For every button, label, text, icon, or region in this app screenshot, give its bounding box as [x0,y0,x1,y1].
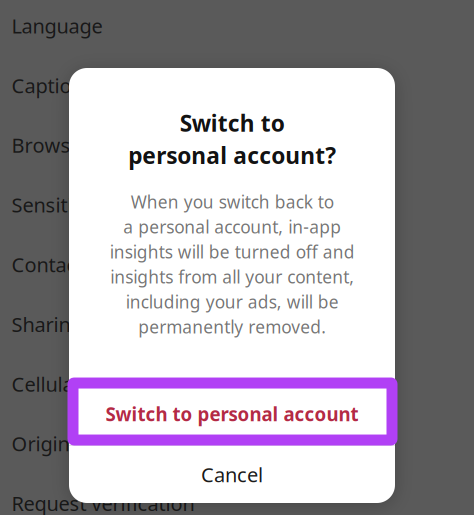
button[interactable]: Sensitive content [0,0,330,26]
button[interactable]: Sharing to other apps [0,0,330,26]
button[interactable]: Language [0,0,330,26]
staticText: Switch to personal account [105,402,358,426]
staticText: Sensitive content [11,191,169,218]
button[interactable]: Request verification [0,0,330,26]
staticText: Language [11,12,102,39]
staticText: Switch to personal account? [128,108,336,170]
button[interactable]: Original posts [0,0,330,26]
staticText: Browsing [11,132,99,158]
button[interactable]: Cancel [69,446,395,503]
button[interactable]: Cellular data use [0,0,330,26]
staticText: Sharing to other apps [11,311,211,337]
button[interactable]: Switch to personal account [69,383,395,445]
staticText: Request verification [11,490,194,515]
button[interactable]: Contacts syncing [0,0,330,26]
staticText: Cellular data use [11,371,165,397]
staticText: Cancel [201,461,263,488]
staticText: Captions [11,72,93,99]
staticText: Contacts syncing [11,251,169,278]
button[interactable]: Browsing [0,0,330,26]
staticText: Original posts [11,430,141,457]
button[interactable]: Captions [0,0,330,26]
staticText: When you switch back to a personal accou… [109,190,354,338]
